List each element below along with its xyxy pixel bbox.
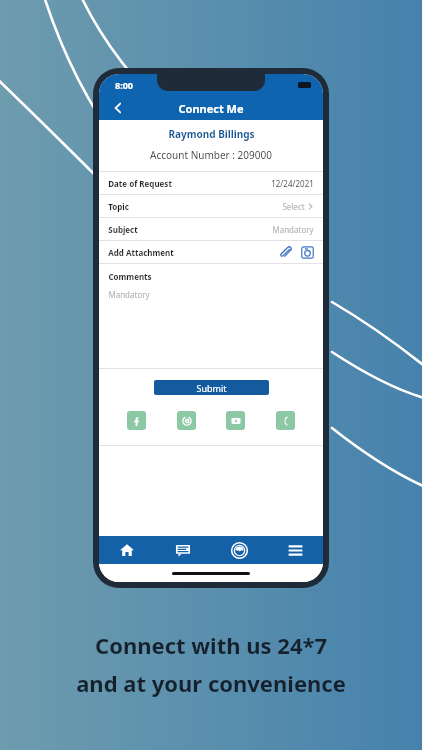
button[interactable]: Back [99, 96, 323, 120]
staticText: Mandatory [108, 289, 150, 300]
staticText: 8:00 [115, 79, 133, 91]
staticText: Raymond Billings [168, 127, 255, 141]
button[interactable]: Add Attachment [99, 241, 323, 263]
staticText: 12/24/2021 [271, 178, 314, 189]
button[interactable]: Messages [155, 536, 211, 564]
button[interactable]: Home [99, 536, 155, 564]
staticText: Submit [196, 382, 227, 394]
button[interactable]: Topic [99, 195, 323, 217]
staticText: Connect with us 24*7 [95, 630, 327, 660]
staticText: Connect Me [178, 101, 244, 116]
staticText: Subject [108, 224, 138, 235]
button[interactable]: Submit [154, 380, 269, 395]
staticText: Comments [108, 271, 152, 282]
staticText: Account Number : 209000 [150, 148, 272, 162]
staticText: Mandatory [272, 224, 314, 235]
staticText: Select [282, 201, 305, 212]
button[interactable]: Usage [211, 536, 267, 564]
button[interactable]: YouTube [226, 411, 245, 430]
button[interactable]: Email [177, 411, 196, 430]
button[interactable]: Facebook [127, 411, 146, 430]
staticText: Topic [108, 201, 129, 212]
button[interactable]: Subject [99, 218, 323, 240]
button[interactable]: Take photo [300, 245, 314, 259]
button[interactable]: Call [276, 411, 295, 430]
button[interactable]: Menu [267, 536, 323, 564]
staticText: Date of Request [108, 178, 172, 189]
button[interactable]: Attach file [278, 245, 292, 259]
button[interactable]: Back [107, 97, 129, 119]
staticText: Add Attachment [108, 247, 174, 258]
staticText: and at your convenience [76, 668, 346, 698]
button[interactable]: Date of Request [99, 172, 323, 194]
